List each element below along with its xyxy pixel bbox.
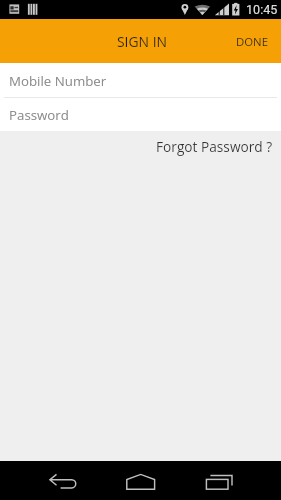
button[interactable]: DONE (225, 22, 281, 62)
button[interactable]: Forgot Password ? (147, 132, 281, 159)
button[interactable]: Password (0, 98, 281, 131)
staticText: Password (9, 106, 69, 124)
button[interactable]: Mobile Number (0, 63, 281, 97)
staticText: 10:45 (246, 2, 278, 17)
staticText: Mobile Number (9, 72, 107, 90)
staticText: Forgot Password ? (156, 137, 273, 156)
button[interactable]: Recent apps (188, 461, 281, 500)
staticText: SIGN IN (117, 32, 168, 51)
staticText: DONE (236, 34, 269, 50)
button[interactable]: Home (94, 461, 188, 500)
button[interactable]: Back (0, 461, 94, 500)
